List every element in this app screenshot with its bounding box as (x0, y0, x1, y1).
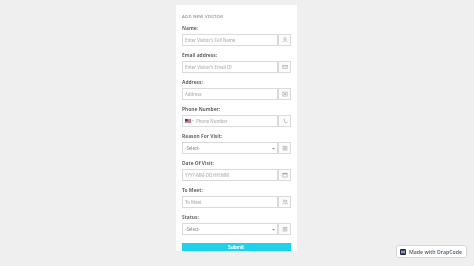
staticText: Address: (182, 79, 203, 86)
button[interactable]: Address (182, 88, 291, 100)
staticText: Enter Visitor's Full Name (185, 37, 236, 43)
staticText: Submit (228, 244, 245, 251)
staticText: Email address: (182, 52, 218, 59)
staticText: Name: (182, 25, 198, 32)
button[interactable]: YYYY-MM-DD HH:MM (182, 169, 291, 181)
staticText: Status: (182, 214, 199, 221)
staticText: -Select- (185, 226, 201, 232)
button[interactable]: To Meet (182, 196, 291, 208)
other: Email (282, 64, 288, 70)
staticText: Date Of Visit: (182, 160, 214, 167)
button[interactable]: -Select- (182, 142, 291, 154)
staticText: ADD NEW VISITOR (182, 14, 224, 20)
staticText: Reason For Visit: (182, 133, 223, 140)
other: Open list (282, 145, 288, 151)
staticText: -Select- (185, 145, 201, 151)
staticText: To Meet: (182, 187, 203, 194)
other: To meet (282, 199, 288, 205)
staticText: To Meet (185, 199, 202, 205)
button[interactable]: Enter Visitor's Full Name (182, 34, 291, 46)
button[interactable]: -Select- (182, 223, 291, 235)
staticText: Enter Visitor's Email ID (185, 64, 232, 70)
staticText: Address (185, 91, 202, 97)
other: Phone (282, 118, 288, 124)
other: Address (282, 91, 288, 97)
button[interactable]: Made with DrapCode (396, 245, 467, 258)
other: Name (282, 37, 288, 43)
button[interactable]: Submit (182, 243, 291, 251)
other: Pick date (282, 172, 288, 178)
staticText: YYYY-MM-DD HH:MM (185, 172, 229, 178)
button[interactable]: Enter Visitor's Email ID (182, 61, 291, 73)
other: Open list (282, 226, 288, 232)
button[interactable]: Phone Number (182, 115, 291, 127)
staticText: Made with DrapCode (409, 248, 463, 255)
staticText: Phone Number (196, 118, 228, 124)
staticText: Phone Number: (182, 106, 221, 113)
